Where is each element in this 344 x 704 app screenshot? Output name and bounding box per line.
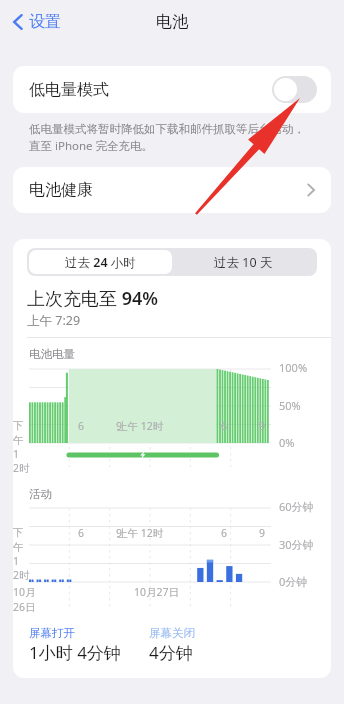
staticText: 低电量模式将暂时降低如下载和邮件抓取等后台活动， xyxy=(29,122,305,136)
staticText: 屏幕关闭 xyxy=(149,626,195,640)
button[interactable]: 低电量模式 xyxy=(13,66,331,113)
staticText: 30分钟 xyxy=(279,537,314,552)
button[interactable]: 设置 xyxy=(8,8,65,36)
staticText: 9 xyxy=(259,526,266,540)
staticText: 活动 xyxy=(29,487,52,501)
staticText: 上午 7:29 xyxy=(27,312,81,329)
staticText: 电池 xyxy=(156,12,188,32)
staticText: 9 xyxy=(259,419,266,433)
staticText: 1小时 4分钟 xyxy=(29,641,121,664)
staticText: 过去 10 天 xyxy=(214,254,273,271)
staticText: 10月26日 xyxy=(13,585,37,614)
staticText: 上次充电至 94% xyxy=(27,286,159,311)
staticText: 下午 12时 xyxy=(13,419,21,475)
staticText: 设置 xyxy=(29,12,61,32)
staticText: 6 xyxy=(78,419,85,433)
button[interactable]: 过去 10 天 xyxy=(172,250,315,274)
staticText: 0分钟 xyxy=(279,574,308,589)
staticText: 0% xyxy=(279,435,295,450)
staticText: 9 xyxy=(116,526,123,540)
staticText: 过去 24 小时 xyxy=(65,254,136,271)
button[interactable]: 过去 24 小时 xyxy=(29,250,172,274)
staticText: 直至 iPhone 完全充电。 xyxy=(29,138,154,154)
staticText: 电池健康 xyxy=(29,180,93,200)
staticText: 6 xyxy=(221,526,228,540)
staticText: 9 xyxy=(116,419,123,433)
staticText: 6 xyxy=(221,419,228,433)
staticText: 60分钟 xyxy=(279,499,314,514)
staticText: 电池电量 xyxy=(29,347,75,361)
staticText: 4分钟 xyxy=(149,641,193,664)
staticText: 上午 12时 xyxy=(117,419,164,433)
staticText: 低电量模式 xyxy=(29,80,109,100)
button[interactable]: 电池健康 xyxy=(13,167,331,213)
staticText: 下午 12时 xyxy=(13,526,21,582)
button[interactable]: 低电量模式开关 xyxy=(272,76,317,103)
staticText: 10月27日 xyxy=(134,585,180,599)
staticText: 屏幕打开 xyxy=(29,626,75,640)
staticText: 50% xyxy=(279,398,301,413)
staticText: 6 xyxy=(78,526,85,540)
staticText: 100% xyxy=(279,360,308,375)
staticText: 上午 12时 xyxy=(117,526,164,540)
